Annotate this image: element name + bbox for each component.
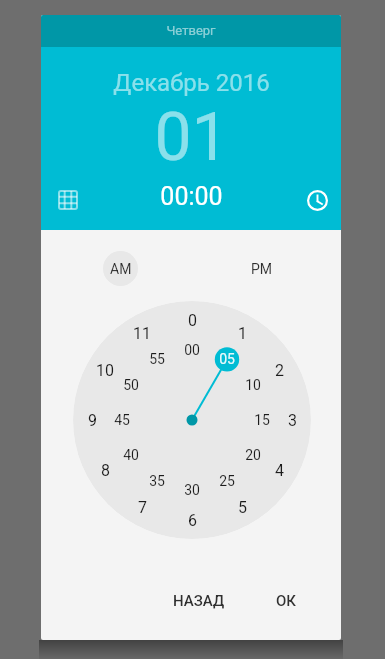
button[interactable]: Switch to time picker (298, 181, 336, 219)
staticText: 00 (184, 342, 200, 358)
staticText: AM (110, 261, 132, 277)
staticText: 9 (88, 411, 97, 430)
staticText: 5 (238, 498, 247, 517)
staticText: 10 (245, 377, 261, 393)
staticText: 30 (184, 482, 200, 498)
staticText: 55 (149, 351, 165, 367)
staticText: 11 (133, 324, 151, 343)
staticText: Четверг (166, 23, 216, 38)
staticText: 3 (288, 411, 297, 430)
button[interactable]: AM (103, 251, 138, 286)
staticText: 7 (138, 498, 147, 517)
staticText: 2 (275, 361, 284, 380)
button[interactable]: Switch to date picker (49, 181, 87, 219)
staticText: 6 (188, 511, 197, 530)
staticText: ОК (276, 592, 297, 610)
staticText: 10 (96, 361, 114, 380)
staticText: 25 (219, 473, 235, 489)
staticText: 0 (188, 311, 197, 330)
staticText: 20 (245, 447, 261, 463)
button[interactable]: PM (244, 251, 279, 286)
button[interactable]: Minute dial, 05 selected (73, 301, 311, 539)
button[interactable]: ОК (267, 583, 305, 619)
staticText: 01 (154, 99, 229, 176)
staticText: 8 (101, 461, 110, 480)
staticText: 1 (238, 324, 247, 343)
staticText: 35 (149, 473, 165, 489)
staticText: НАЗАД (173, 592, 225, 610)
staticText: 45 (114, 412, 130, 428)
staticText: 4 (275, 461, 284, 480)
staticText: Декабрь 2016 (113, 69, 270, 97)
staticText: 00:00 (160, 182, 223, 211)
staticText: PM (251, 261, 273, 277)
staticText: 50 (123, 377, 139, 393)
staticText: 40 (123, 447, 139, 463)
button[interactable]: НАЗАД (164, 583, 234, 619)
staticText: 15 (254, 412, 270, 428)
staticText: 05 (219, 351, 235, 367)
